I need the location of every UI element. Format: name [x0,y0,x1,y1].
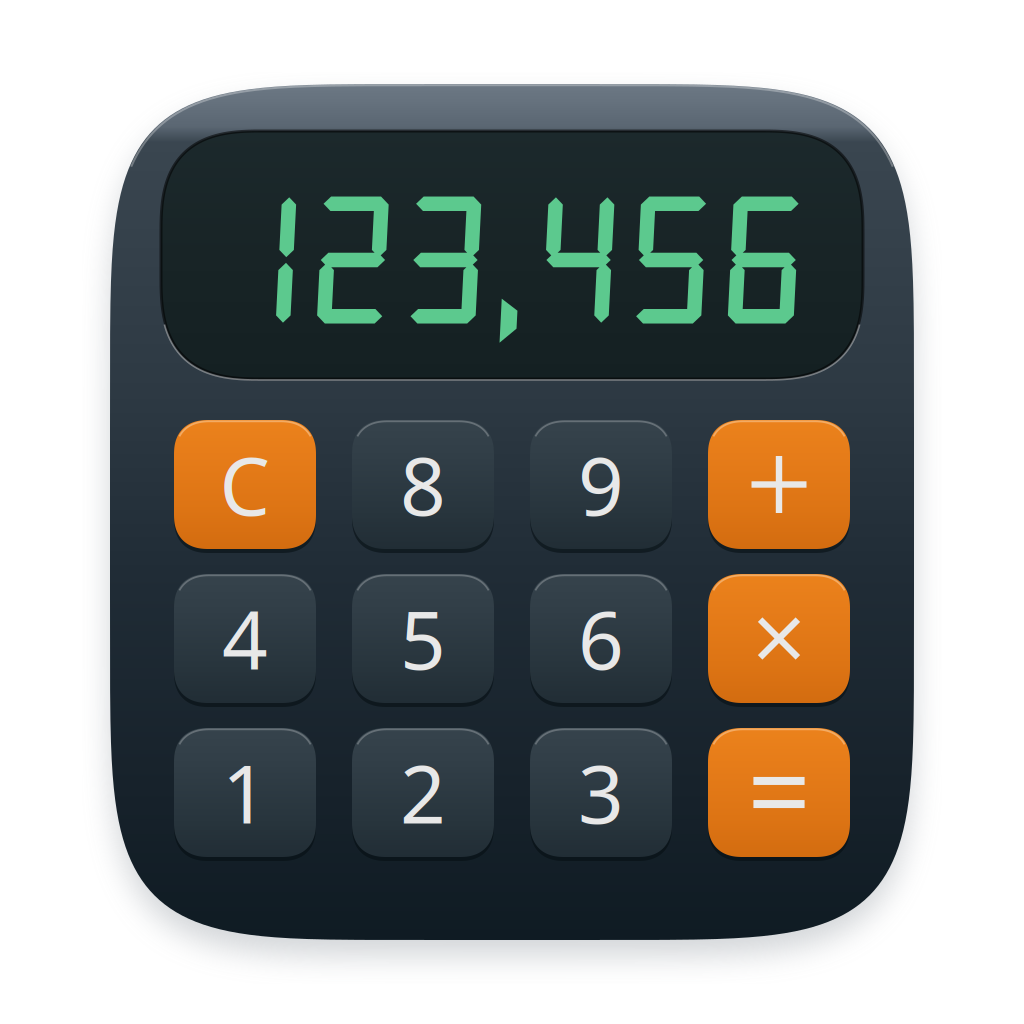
button[interactable]: 6 [530,574,672,703]
staticText: C [219,431,270,538]
staticText: 9 [578,431,624,538]
staticText: 5 [400,585,446,692]
button[interactable]: 1 [174,728,316,857]
button[interactable]: 5 [352,574,494,703]
staticText: 4 [222,585,268,692]
staticText: 3 [578,739,624,846]
button[interactable] [708,728,850,857]
staticText: 2 [400,739,446,846]
staticText: 8 [400,431,446,538]
button[interactable]: 2 [352,728,494,857]
button[interactable]: 3 [530,728,672,857]
button[interactable]: 9 [530,420,672,549]
button[interactable]: C [174,420,316,549]
button[interactable]: 8 [352,420,494,549]
button[interactable]: 4 [174,574,316,703]
staticText: 6 [578,585,624,692]
button[interactable] [708,574,850,703]
button[interactable] [708,420,850,549]
staticText: 1 [222,739,268,846]
